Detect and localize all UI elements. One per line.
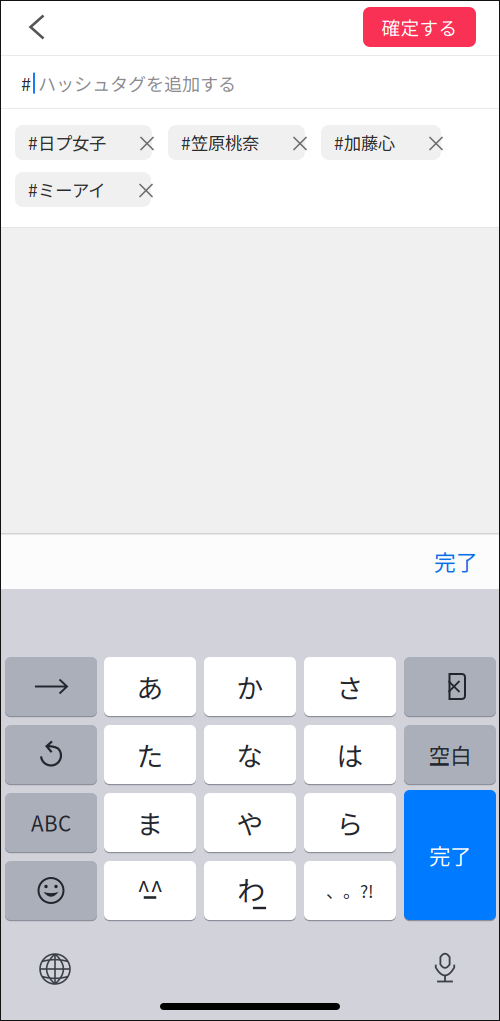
staticText: か <box>236 667 263 706</box>
button[interactable]: #日プ女子 <box>15 125 152 160</box>
button[interactable]: さ <box>304 657 396 717</box>
button[interactable]: #笠原桃奈 <box>168 125 305 160</box>
button[interactable]: 空白 <box>404 725 496 785</box>
button[interactable]: 、。?! <box>304 861 396 921</box>
staticText: な <box>236 735 263 774</box>
staticText: ら <box>336 803 363 842</box>
button[interactable]: Undo <box>5 725 97 785</box>
staticText: 空白 <box>429 739 471 770</box>
staticText: ハッシュタグを追加する <box>38 70 236 96</box>
staticText: や <box>236 803 263 842</box>
button[interactable]: ま <box>104 793 196 853</box>
staticText: ま <box>136 803 163 842</box>
button[interactable]: Kaomoji <box>104 861 196 921</box>
button[interactable]: ABC <box>5 793 97 853</box>
staticText: ABC <box>31 807 71 837</box>
staticText: わ <box>237 869 265 909</box>
staticText: さ <box>336 667 363 706</box>
button[interactable]: Switch keyboard <box>28 942 82 996</box>
button[interactable]: わ <box>204 861 296 921</box>
staticText: 完了 <box>429 840 471 870</box>
staticText: 確定する <box>381 13 457 40</box>
button[interactable]: か <box>204 657 296 717</box>
staticText: あ <box>136 667 163 706</box>
button[interactable]: Next candidate <box>5 657 97 717</box>
button[interactable]: や <box>204 793 296 853</box>
staticText: ^^ <box>137 872 163 907</box>
staticText: は <box>336 735 363 774</box>
button[interactable]: #加藤心 <box>321 125 441 160</box>
button[interactable]: あ <box>104 657 196 717</box>
staticText: #加藤心 <box>334 130 395 155</box>
button[interactable]: な <box>204 725 296 785</box>
button[interactable]: 完了 <box>388 533 478 589</box>
button[interactable]: た <box>104 725 196 785</box>
staticText: #ミーアイ <box>28 177 105 202</box>
button[interactable]: 完了 <box>404 790 496 921</box>
button[interactable]: ら <box>304 793 396 853</box>
staticText: # <box>21 70 31 96</box>
staticText: た <box>136 735 163 774</box>
staticText: #笠原桃奈 <box>181 130 259 155</box>
button[interactable]: は <box>304 725 396 785</box>
button[interactable]: Dictation <box>418 940 472 994</box>
staticText: #日プ女子 <box>28 130 106 155</box>
staticText: 、。?! <box>326 878 374 903</box>
staticText: 完了 <box>434 545 478 577</box>
button[interactable]: 確定する <box>363 7 476 47</box>
button[interactable]: Delete <box>404 657 496 717</box>
button[interactable]: Back <box>11 2 63 52</box>
button[interactable]: Emoji <box>5 861 97 921</box>
button[interactable]: #ミーアイ <box>15 172 151 207</box>
